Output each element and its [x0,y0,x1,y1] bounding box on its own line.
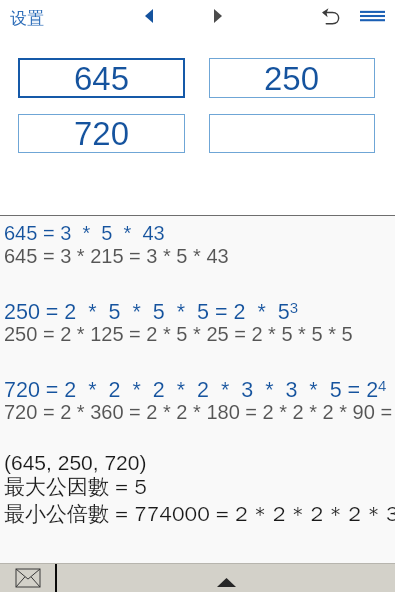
staticText: 645 = 3 * 215 = 3 * 5 * 43 [4,245,229,267]
button[interactable]: 250 [209,58,375,98]
button[interactable]: Undo [314,0,346,32]
staticText: 645 = 3 * 5 * 43 [4,222,165,244]
button[interactable]: 720 [18,114,185,153]
button[interactable] [209,114,375,153]
button[interactable]: 645 [18,58,185,98]
staticText: 250 = 2 * 125 = 2 * 5 * 25 = 2 * 5 * 5 *… [4,323,353,345]
button[interactable]: Mail [0,564,55,592]
staticText: 720 [74,115,130,152]
staticText: (645, 250, 720) [4,451,147,474]
staticText: 250 = 2 * 5 * 5 * 5 = 2 * 53 [4,299,299,324]
button[interactable]: Previous [135,2,163,30]
button[interactable]: Next [204,2,232,30]
staticText: 645 [74,60,130,97]
staticText: 720 = 2 * 360 = 2 * 2 * 180 = 2 * 2 * 2 … [4,401,395,423]
staticText: 最小公倍數 = 774000 = 2 * 2 * 2 * 2 * 3 * 3 *… [4,501,395,527]
button[interactable]: 设置 [4,4,50,32]
staticText: 设置 [10,8,44,29]
button[interactable]: Menu [356,2,389,29]
button[interactable]: Scroll up [57,564,395,592]
staticText: 250 [264,60,320,97]
staticText: 720 = 2 * 2 * 2 * 2 * 3 * 3 * 5 = 24 [4,377,387,402]
staticText: 最大公因數 = 5 [4,474,147,500]
